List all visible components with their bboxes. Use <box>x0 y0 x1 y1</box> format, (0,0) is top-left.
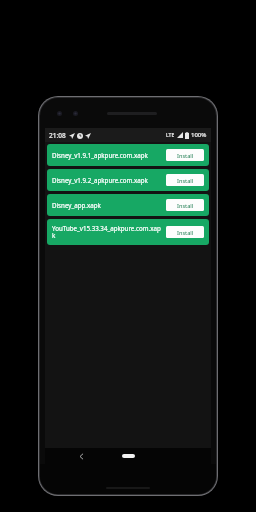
staticText: 21:08 <box>49 131 66 140</box>
staticText: YouTube_v15.33.34_apkpure.com.xapk <box>52 224 162 240</box>
button[interactable]: Install <box>166 149 204 161</box>
button[interactable]: Disney_v1.9.2_apkpure.com.xapk <box>47 169 209 191</box>
button[interactable]: Disney_v1.9.1_apkpure.com.xapk <box>47 144 209 166</box>
staticText: Install <box>177 202 194 209</box>
staticText: Disney_v1.9.1_apkpure.com.xapk <box>52 151 148 159</box>
staticText: Install <box>177 152 194 159</box>
button[interactable]: Install <box>166 199 204 211</box>
staticText: Install <box>177 177 194 184</box>
button[interactable]: Back <box>75 450 87 462</box>
button[interactable]: Install <box>166 226 204 238</box>
button[interactable]: Install <box>166 174 204 186</box>
staticText: Install <box>177 229 194 236</box>
button[interactable]: Home <box>116 450 140 462</box>
staticText: LTE <box>166 132 175 139</box>
staticText: 100% <box>191 131 207 139</box>
button[interactable]: YouTube_v15.33.34_apkpure.com.xapk <box>47 219 209 245</box>
staticText: Disney_v1.9.2_apkpure.com.xapk <box>52 176 148 184</box>
button[interactable]: Disney_app.xapk <box>47 194 209 216</box>
staticText: Disney_app.xapk <box>52 201 101 209</box>
